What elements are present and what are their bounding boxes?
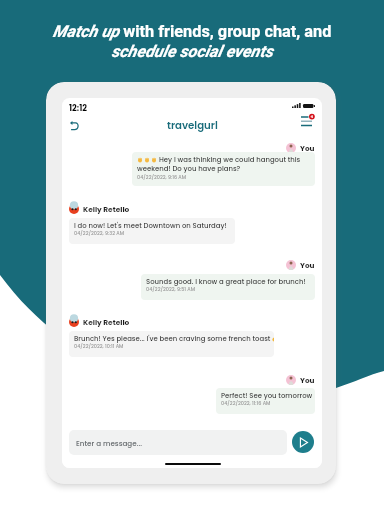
staticText: Kelly Retello: [83, 204, 130, 214]
button[interactable]: Back: [66, 117, 82, 133]
button[interactable]: Enter a message...: [69, 430, 287, 455]
staticText: 04/22/2022, 9:16 AM: [137, 174, 187, 181]
staticText: Perfect! See you tomorrow: [221, 391, 313, 401]
staticText: 12:12: [69, 102, 88, 114]
button[interactable]: Perfect! See you tomorrow: [216, 388, 315, 414]
staticText: You: [300, 143, 315, 153]
button[interactable]: Hey I was thinking we could hangout this: [132, 152, 315, 186]
staticText: 04/22/2022, 9:32 AM: [74, 230, 124, 237]
staticText: 04/22/2022, 9:51 AM: [146, 286, 196, 293]
staticText: Enter a message...: [76, 438, 142, 448]
staticText: Brunch! Yes please... I've been craving …: [74, 334, 271, 344]
staticText: 04/22/2022, 10:11 AM: [74, 343, 124, 350]
staticText: 04/22/2022, 11:16 AM: [221, 400, 271, 407]
staticText: travelgurl: [167, 118, 218, 132]
staticText: weekend! Do you have plans?: [137, 164, 241, 174]
staticText: Match up with friends, group chat, and s…: [0, 22, 384, 61]
button[interactable]: Brunch! Yes please... I've been craving …: [69, 331, 274, 357]
button[interactable]: Send: [292, 431, 314, 453]
staticText: Hey I was thinking we could hangout this: [159, 155, 301, 165]
staticText: Kelly Retello: [83, 317, 130, 327]
button[interactable]: Menu: [297, 114, 315, 132]
staticText: You: [300, 375, 315, 385]
staticText: I do now! Let's meet Downtown on Saturda…: [74, 221, 227, 231]
button[interactable]: I do now! Let's meet Downtown on Saturda…: [69, 218, 235, 244]
staticText: Sounds good. I know a great place for br…: [146, 277, 306, 287]
button[interactable]: Sounds good. I know a great place for br…: [141, 274, 315, 300]
staticText: You: [300, 260, 315, 270]
